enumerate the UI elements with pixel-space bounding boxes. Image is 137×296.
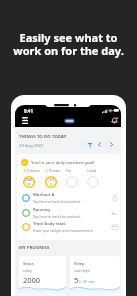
staticText: h 30 min — [79, 279, 95, 284]
button[interactable]: Notifications — [107, 113, 121, 127]
staticText: Steps — [23, 261, 34, 267]
staticText: Track body stats — [33, 221, 66, 227]
staticText: Enter your weight and measurements — [33, 228, 94, 233]
button[interactable]: Previous day — [95, 140, 104, 149]
button[interactable]: Running — [19, 205, 120, 220]
staticText: Carbs — [87, 168, 97, 173]
staticText: Workout A — [33, 192, 55, 198]
button[interactable]: Steps — [19, 256, 66, 296]
staticText: 5 — [74, 275, 79, 285]
staticText: g — [50, 182, 52, 186]
staticText: 30 Aug 2022 — [19, 143, 44, 149]
staticText: 9:41 — [24, 108, 33, 114]
staticText: 150 — [48, 178, 54, 182]
staticText: 2000 — [23, 275, 41, 285]
staticText: You hit your daily nutrition goal! — [31, 160, 94, 166]
staticText: Running — [33, 207, 50, 213]
staticText: cal — [27, 182, 31, 186]
staticText: Last night — [74, 268, 90, 273]
staticText: Tap here to track this workout — [33, 199, 81, 204]
staticText: 2000 — [25, 178, 33, 182]
staticText: Easily see what to work on for the day. — [0, 30, 137, 59]
button[interactable]: Workout A — [19, 190, 120, 205]
staticText: today — [23, 268, 32, 273]
staticText: Calories — [27, 168, 40, 173]
button[interactable]: Calendar view — [86, 141, 93, 149]
staticText: Protein — [49, 168, 61, 173]
staticText: MY PROGRESS — [19, 245, 50, 251]
button[interactable]: Menu — [18, 113, 32, 127]
staticText: Fat — [66, 168, 71, 173]
staticText: Sleep — [74, 261, 85, 267]
staticText: THINGS TO DO TODAY — [19, 134, 67, 140]
button[interactable]: Sleep — [70, 256, 120, 296]
staticText: Tap here to track this workout — [33, 214, 81, 219]
button[interactable]: Next day — [107, 140, 116, 149]
button[interactable]: Track body stats — [19, 219, 120, 234]
